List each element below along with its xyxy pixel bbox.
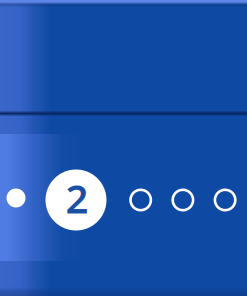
staticText: 2 [65, 171, 88, 224]
button[interactable]: Page 1 [6, 188, 25, 207]
button[interactable]: Page [214, 188, 237, 211]
button[interactable]: Page [129, 188, 152, 211]
button[interactable]: Page [171, 188, 194, 211]
button[interactable]: Page 2, current page [45, 169, 106, 230]
